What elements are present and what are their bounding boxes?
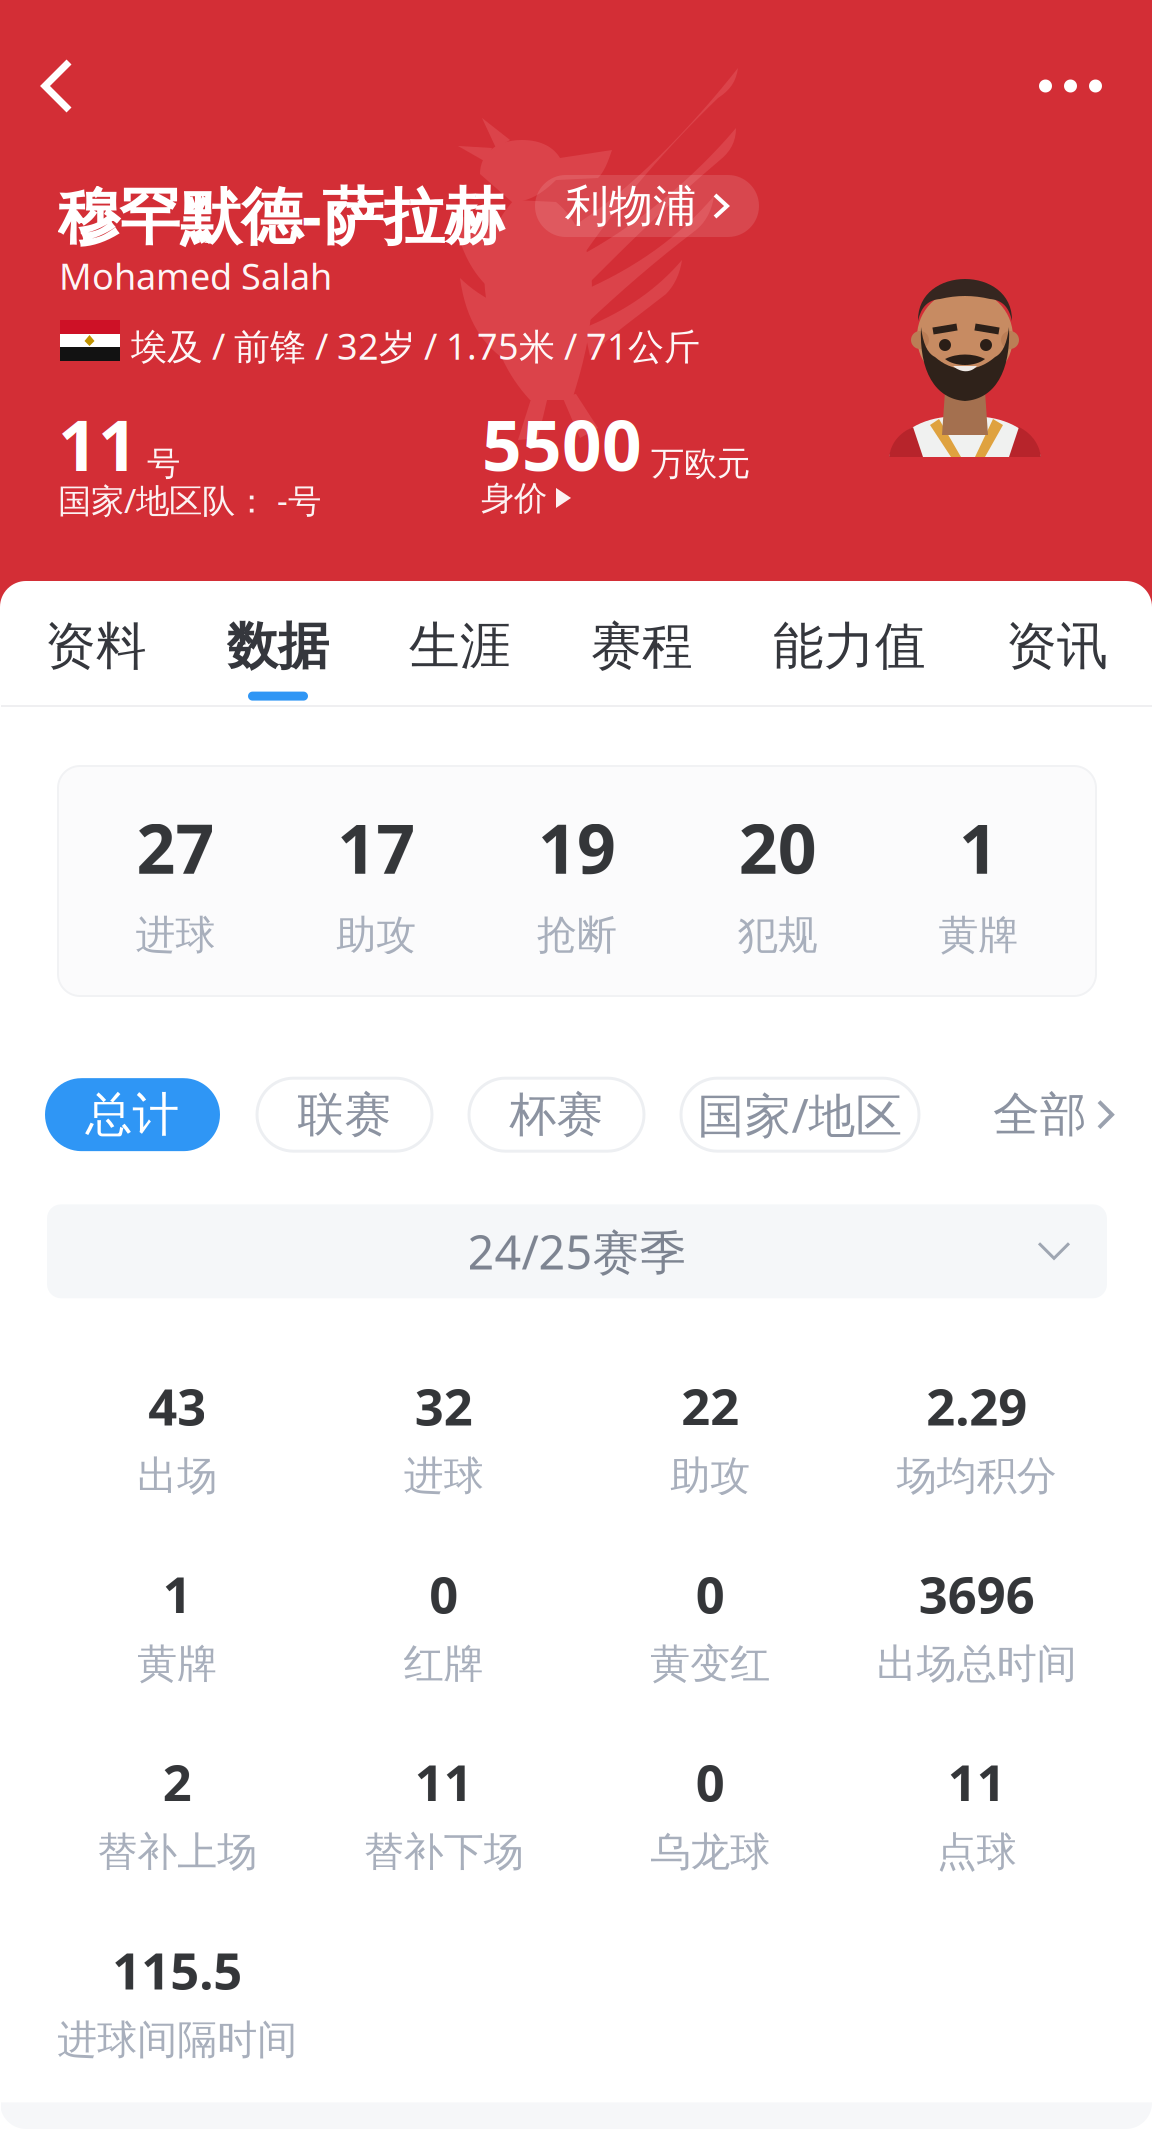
staticText: 红牌 [404,1639,484,1688]
staticText: 进球 [404,1451,484,1500]
staticText: 号 [147,443,180,484]
staticText: 5500 [482,398,642,490]
staticText: 0 [696,1748,725,1815]
staticText: 利物浦 [565,179,697,233]
button[interactable]: 利物浦 [535,175,759,237]
button[interactable]: 数据 [227,585,329,701]
staticText: 赛程 [591,615,693,678]
staticText: 17 [337,802,415,893]
staticText: 能力值 [773,615,926,678]
staticText: 1 [959,802,998,893]
button[interactable]: 杯赛 [469,1078,644,1151]
staticText: 出场 [137,1451,217,1500]
button[interactable]: 能力值 [773,585,926,701]
button[interactable]: 国家/地区 [681,1078,919,1151]
staticText: 国家/地区 [697,1084,902,1146]
staticText: 身价 [481,478,547,519]
staticText: 11 [948,1748,1006,1815]
staticText: 出场总时间 [877,1639,1077,1688]
staticText: 点球 [937,1827,1017,1876]
button[interactable]: 全部 [993,1072,1114,1157]
button[interactable]: 资讯 [1006,585,1108,701]
staticText: 20 [739,802,817,893]
staticText: 助攻 [336,911,416,960]
staticText: 115.5 [112,1936,242,2003]
staticText: 埃及 / 前锋 / 32岁 / 1.75米 / 71公斤 [131,322,700,370]
staticText: 黄牌 [137,1639,217,1688]
staticText: 黄牌 [939,911,1019,960]
staticText: 替补上场 [97,1827,257,1876]
staticText: 32 [415,1372,473,1439]
button[interactable]: 联赛 [257,1078,432,1151]
staticText: 24/25赛季 [467,1220,686,1282]
staticText: 43 [148,1372,206,1439]
staticText: 进球间隔时间 [57,2015,297,2064]
button[interactable]: 资料 [45,585,147,701]
staticText: 国家/地区队： -号 [58,478,321,522]
staticText: 犯规 [738,911,818,960]
staticText: 生涯 [409,615,511,678]
staticText: 进球 [135,911,215,960]
staticText: 助攻 [670,1451,750,1500]
staticText: 抢断 [537,911,617,960]
button[interactable]: 24/25赛季 [47,1204,1107,1298]
staticText: 1 [163,1560,192,1627]
button[interactable]: Back [22,44,92,128]
staticText: 场均积分 [897,1451,1057,1500]
button[interactable]: 总计 [45,1078,220,1151]
staticText: 杯赛 [509,1086,603,1143]
staticText: 总计 [85,1086,179,1143]
staticText: 替补下场 [364,1827,524,1876]
staticText: 联赛 [297,1086,391,1143]
staticText: 资讯 [1006,615,1108,678]
button[interactable]: More options [1021,44,1120,128]
staticText: 19 [538,802,616,893]
staticText: 2 [163,1748,192,1815]
staticText: 2.29 [926,1372,1027,1439]
staticText: 11 [58,398,138,490]
staticText: 万欧元 [651,443,750,484]
staticText: 乌龙球 [650,1827,770,1876]
staticText: 数据 [227,615,329,678]
button[interactable]: 生涯 [409,585,511,701]
staticText: 11 [415,1748,473,1815]
staticText: 穆罕默德-萨拉赫 [58,174,505,255]
button[interactable]: 赛程 [591,585,693,701]
staticText: 0 [696,1560,725,1627]
staticText: 3696 [919,1560,1035,1627]
staticText: 0 [429,1560,458,1627]
staticText: 27 [136,802,214,893]
button[interactable]: 身价 [481,478,572,519]
staticText: 资料 [45,615,147,678]
staticText: Mohamed Salah [59,252,332,300]
staticText: 全部 [993,1086,1087,1143]
staticText: 22 [681,1372,739,1439]
staticText: 黄变红 [650,1639,770,1688]
